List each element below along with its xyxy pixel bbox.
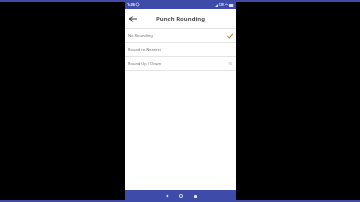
button[interactable]: Back	[160, 190, 174, 202]
staticText: Punch Rounding	[156, 15, 205, 23]
staticText: LTE	[219, 3, 224, 7]
button[interactable]: Recent apps	[188, 190, 202, 202]
button[interactable]: Round Up / Down	[125, 57, 236, 70]
button[interactable]: Back	[125, 11, 141, 27]
button[interactable]: No Rounding	[125, 29, 236, 42]
staticText: Round Up / Down	[128, 61, 228, 66]
button[interactable]: Home	[174, 190, 188, 202]
staticText: 1:26	[127, 2, 135, 7]
staticText: No Rounding	[128, 33, 227, 38]
button[interactable]: Round to Nearest	[125, 43, 236, 56]
staticText: 15	[228, 61, 233, 66]
staticText: Round to Nearest	[128, 47, 233, 52]
